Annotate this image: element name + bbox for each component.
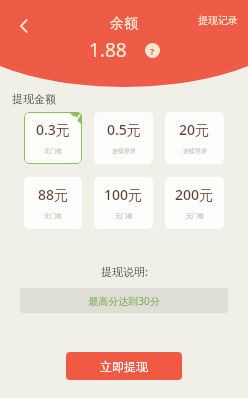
staticText: 最高分达到30分 xyxy=(88,294,160,308)
button[interactable]: 0.5元 xyxy=(94,112,153,164)
staticText: 200元 xyxy=(175,185,214,204)
staticText: 立即提现 xyxy=(100,359,148,374)
staticText: 连续登录 xyxy=(183,147,207,155)
staticText: 无门槛 xyxy=(44,212,62,220)
staticText: 20元 xyxy=(179,120,210,139)
button[interactable]: Help xyxy=(145,43,160,58)
button[interactable]: 提现记录 xyxy=(192,10,244,31)
staticText: 0.5元 xyxy=(107,120,141,139)
staticText: 0.3元 xyxy=(36,120,70,139)
button[interactable]: 立即提现 xyxy=(66,352,182,380)
button[interactable]: 20元 xyxy=(165,112,224,164)
staticText: 无门槛 xyxy=(186,212,204,220)
staticText: 无门槛 xyxy=(44,147,62,155)
button[interactable]: 100元 xyxy=(94,177,153,229)
staticText: ? xyxy=(150,45,155,57)
staticText: 100元 xyxy=(104,185,143,204)
staticText: 提现金额 xyxy=(12,92,56,106)
staticText: 88元 xyxy=(38,185,69,204)
staticText: 无门槛 xyxy=(115,212,133,220)
button[interactable]: 200元 xyxy=(165,177,224,229)
staticText: 余额 xyxy=(110,15,138,33)
staticText: 提现记录 xyxy=(198,14,238,27)
button[interactable]: 88元 xyxy=(24,177,82,229)
staticText: 提现说明: xyxy=(101,264,148,279)
staticText: 连续登录 xyxy=(112,147,136,155)
staticText: 1.88 xyxy=(89,37,127,63)
button[interactable]: 0.3元 xyxy=(24,112,82,164)
button[interactable]: Back xyxy=(10,12,38,40)
